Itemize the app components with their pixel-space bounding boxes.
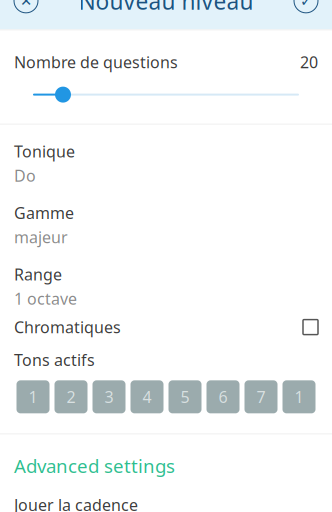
button[interactable]: 2	[54, 380, 87, 413]
button[interactable]: Valider	[280, 0, 332, 29]
button[interactable]: 5	[168, 380, 201, 413]
staticText: 1	[28, 386, 37, 407]
staticText: Tonique	[14, 141, 75, 162]
staticText: Gamme	[14, 202, 74, 223]
button[interactable]: Gamme	[0, 186, 332, 248]
staticText: 7	[256, 386, 265, 407]
button[interactable]: Advanced settings	[0, 434, 332, 478]
staticText: 6	[218, 386, 227, 407]
staticText: 1 octave	[14, 288, 77, 309]
staticText: 5	[180, 386, 189, 407]
button[interactable]: 6	[206, 380, 239, 413]
staticText: ✓	[300, 0, 312, 9]
button[interactable]: 1	[16, 380, 49, 413]
button[interactable]: Tonique	[0, 125, 332, 186]
button[interactable]: 3	[92, 380, 125, 413]
staticText: Nouveau niveau	[78, 0, 253, 16]
button[interactable]: Annuler	[0, 0, 52, 29]
staticText: 1	[294, 386, 303, 407]
staticText: ✕	[20, 0, 32, 9]
staticText: Tons actifs	[14, 349, 95, 370]
staticText: 2	[66, 386, 75, 407]
button[interactable]: Jouer la cadence	[0, 478, 332, 512]
staticText: 20	[300, 51, 318, 73]
staticText: 3	[104, 386, 113, 407]
staticText: Do	[14, 165, 36, 186]
staticText: 4	[142, 386, 151, 407]
staticText: Jouer la cadence	[14, 494, 138, 512]
button[interactable]: 7	[244, 380, 277, 413]
button[interactable]: Range	[0, 248, 332, 309]
button[interactable]: 4	[130, 380, 163, 413]
button[interactable]: 1	[282, 380, 315, 413]
staticText: Range	[14, 264, 62, 285]
button[interactable]: Chromatiques	[0, 309, 332, 345]
staticText: Nombre de questions	[14, 51, 178, 73]
staticText: majeur	[14, 226, 68, 248]
staticText: Advanced settings	[14, 453, 175, 478]
staticText: Chromatiques	[14, 316, 121, 338]
